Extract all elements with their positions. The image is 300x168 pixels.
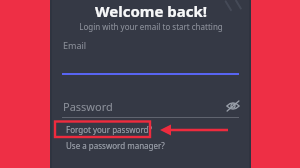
button[interactable]: Email (63, 36, 238, 76)
staticText: Forgot your password? (66, 124, 152, 135)
staticText: Use a password manager? (66, 140, 165, 151)
staticText: Welcome back! (95, 1, 207, 19)
button[interactable]: Use a password manager? (66, 138, 176, 152)
staticText: Email (63, 39, 87, 51)
staticText: Login with your email to start chatting (79, 21, 223, 32)
button[interactable]: Forgot your password? (63, 122, 153, 136)
button[interactable]: Show password (222, 96, 244, 116)
staticText: Password (63, 99, 113, 114)
button[interactable]: Password (63, 96, 213, 116)
